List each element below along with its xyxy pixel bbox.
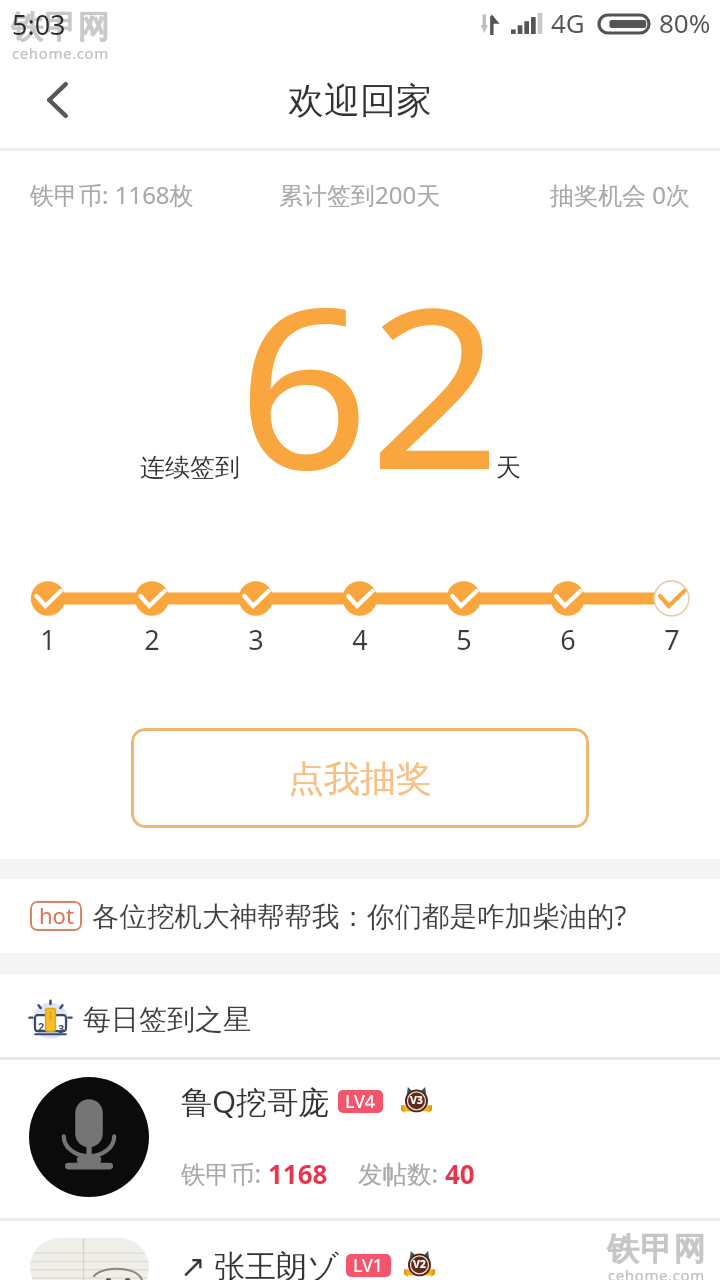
staticText: 累计签到200天 [279, 178, 441, 211]
staticText: LV1 [353, 1254, 384, 1276]
staticText: cehome.com [608, 1265, 705, 1280]
staticText: 2 [132, 621, 172, 658]
staticText: ↗ 张王朗ゾ [180, 1244, 339, 1280]
staticText: 3 [58, 1021, 65, 1036]
staticText: 6 [548, 621, 588, 658]
staticText: 40 [445, 1156, 475, 1191]
staticText: 铁甲币: [181, 1157, 268, 1190]
staticText: V2 [413, 1257, 426, 1271]
staticText: 各位挖机大神帮帮我：你们都是咋加柴油的? [92, 897, 627, 935]
staticText: 铁甲币: 1168枚 [30, 178, 194, 211]
button[interactable]: hot [0, 879, 720, 953]
staticText: 发帖数: [358, 1157, 445, 1190]
staticText: 4 [340, 621, 380, 658]
staticText: 鲁Q挖哥庞 [181, 1080, 330, 1122]
staticText: 62 [237, 233, 502, 519]
staticText: 1168 [268, 1156, 328, 1191]
staticText: 每日签到之星 [83, 1002, 251, 1037]
staticText: 天 [496, 452, 521, 483]
staticText: 铁甲网 [607, 1229, 707, 1269]
staticText: 4G [551, 5, 585, 40]
staticText: 欢迎回家 [288, 78, 432, 123]
staticText: 铁甲网 [11, 7, 111, 47]
staticText: 点我抽奖 [288, 756, 432, 801]
staticText: 80% [659, 5, 711, 40]
staticText: cehome.com [12, 43, 109, 63]
button[interactable]: 点我抽奖 [131, 728, 589, 828]
staticText: 3 [236, 621, 276, 658]
button[interactable]: ↗ 张王朗ゾ [0, 1221, 720, 1280]
staticText: LV4 [345, 1090, 376, 1112]
staticText: 连续签到 [140, 452, 240, 483]
staticText: 抽奖机会 0次 [550, 178, 690, 211]
staticText: hot [39, 901, 74, 930]
staticText: 5 [444, 621, 484, 658]
staticText: 1 [28, 621, 68, 658]
staticText: 5:03 [12, 6, 66, 43]
staticText: V3 [410, 1093, 423, 1107]
staticText: 7 [652, 621, 692, 658]
button[interactable]: Back [24, 68, 88, 132]
button[interactable]: 鲁Q挖哥庞 [0, 1059, 720, 1219]
staticText: 2 [38, 1019, 45, 1034]
